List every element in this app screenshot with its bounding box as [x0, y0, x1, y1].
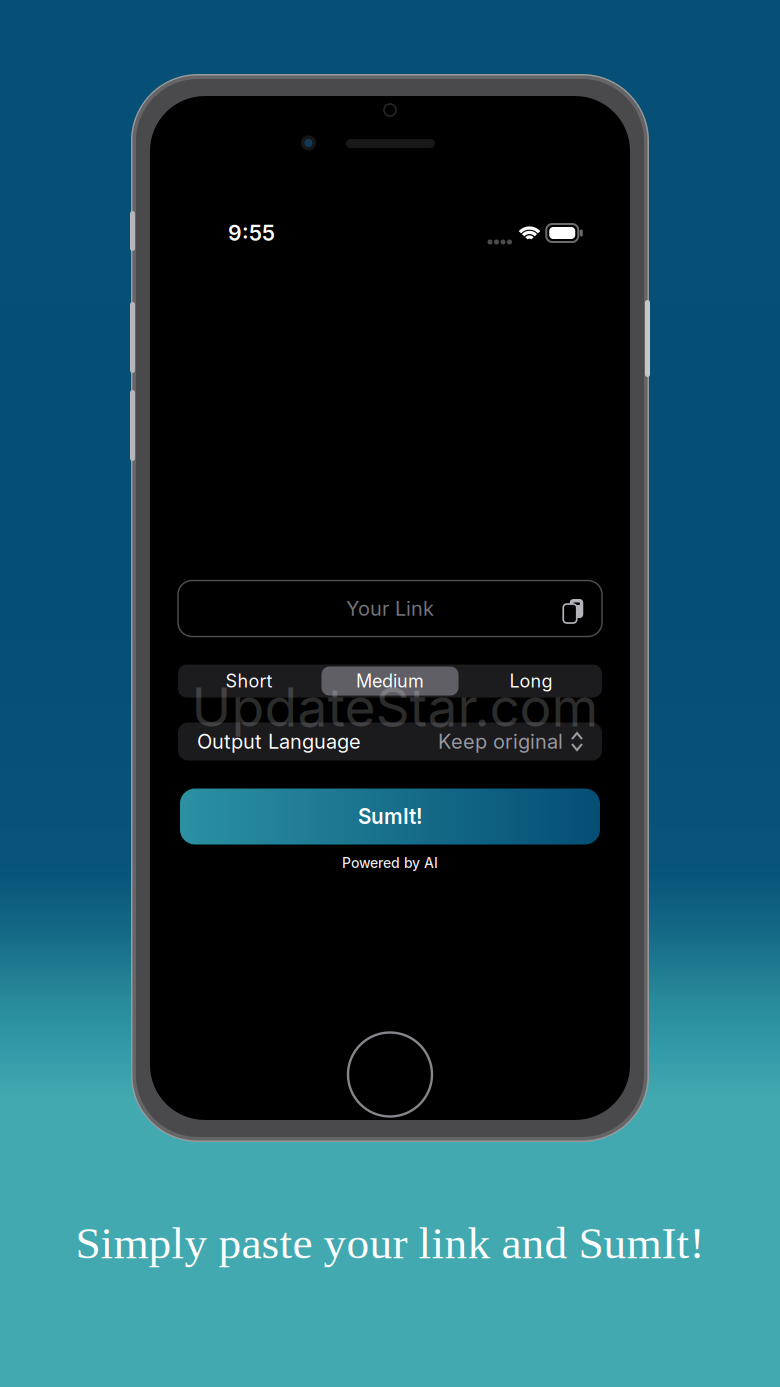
staticText: Medium: [356, 670, 424, 692]
staticText: UpdateStar.com: [191, 675, 598, 739]
button[interactable]: SumIt!: [180, 788, 600, 844]
staticText: Keep original: [438, 729, 563, 754]
staticText: 9:55: [228, 220, 275, 246]
staticText: Simply paste your link and SumIt!: [75, 1218, 704, 1268]
staticText: Long: [509, 670, 552, 692]
staticText: Output Language: [197, 729, 361, 754]
staticText: Powered by AI: [342, 854, 438, 871]
staticText: Short: [225, 670, 272, 692]
button[interactable]: Output Language: [178, 722, 602, 760]
staticText: SumIt!: [358, 804, 422, 829]
staticText: Your Link: [346, 596, 434, 621]
button[interactable]: Short: [178, 664, 602, 697]
button[interactable]: Your Link: [178, 580, 602, 636]
